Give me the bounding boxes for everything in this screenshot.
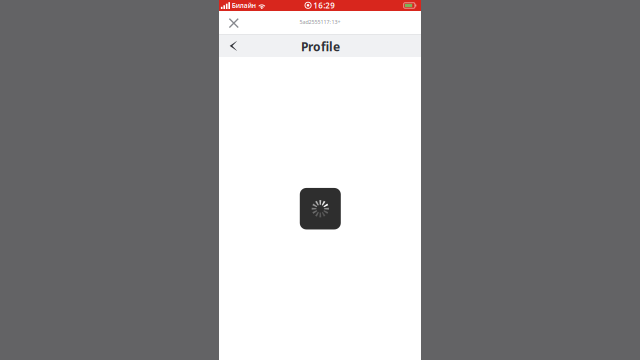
- button[interactable]: Close: [220, 12, 248, 35]
- staticText: Билайн: [232, 1, 256, 10]
- staticText: 5ad2555117: 13+: [299, 18, 340, 26]
- button[interactable]: Back: [220, 35, 247, 57]
- staticText: 16:29: [313, 0, 335, 11]
- staticText: Profile: [301, 39, 340, 55]
